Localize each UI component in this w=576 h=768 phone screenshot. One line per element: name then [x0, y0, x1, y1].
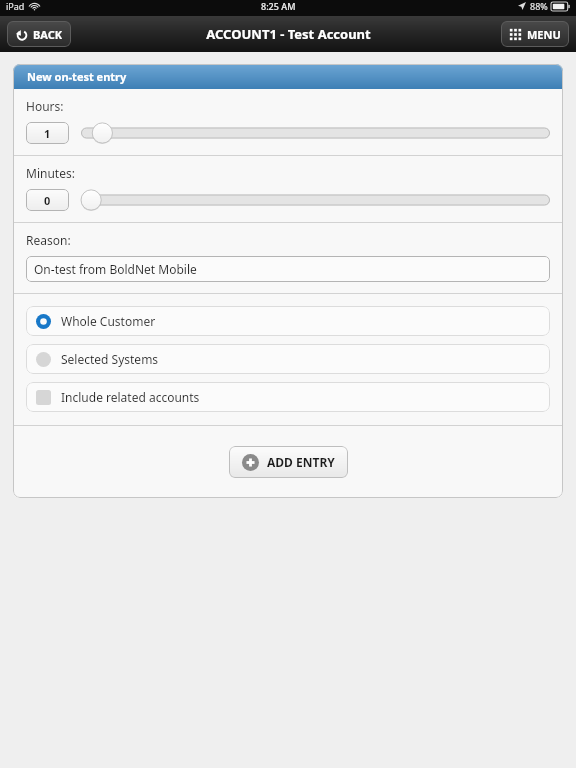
button[interactable]: 1	[26, 122, 69, 144]
button[interactable]: On-test from BoldNet Mobile	[26, 256, 550, 282]
button[interactable]: Back	[7, 21, 71, 47]
button[interactable]: Include related accounts	[26, 382, 550, 412]
button[interactable]: Slider	[81, 122, 550, 144]
staticText: New on-test entry	[27, 69, 127, 84]
staticText: 88%	[530, 0, 548, 12]
other: Back	[15, 28, 28, 41]
staticText: Include related accounts	[61, 389, 200, 405]
button[interactable]: Whole Customer	[26, 306, 550, 336]
staticText: 0	[44, 193, 51, 208]
button[interactable]: 0	[26, 189, 69, 211]
staticText: Hours:	[26, 98, 64, 114]
staticText: BACK	[33, 27, 63, 42]
button[interactable]: Slider	[81, 189, 550, 211]
staticText: Minutes:	[26, 165, 75, 181]
button[interactable]: ADD ENTRY	[229, 446, 348, 478]
staticText: On-test from BoldNet Mobile	[34, 261, 197, 277]
staticText: ACCOUNT1 - Test Account	[206, 25, 371, 43]
button[interactable]: Menu	[501, 21, 569, 47]
button[interactable]: Selected Systems	[26, 344, 550, 374]
staticText: Selected Systems	[61, 351, 159, 367]
other: Menu	[509, 28, 522, 41]
staticText: Whole Customer	[61, 313, 156, 329]
staticText: MENU	[527, 27, 561, 42]
staticText: iPad	[6, 0, 25, 12]
staticText: Reason:	[26, 232, 71, 248]
staticText: ADD ENTRY	[267, 454, 335, 470]
staticText: 8:25 AM	[261, 0, 296, 12]
staticText: 1	[44, 126, 51, 141]
